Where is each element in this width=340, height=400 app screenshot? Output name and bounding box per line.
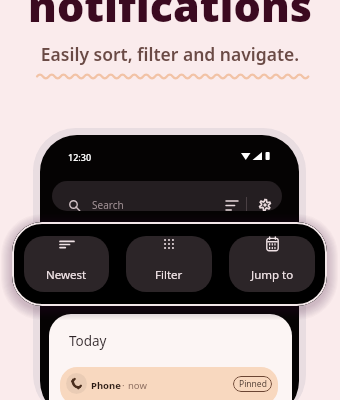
staticText: Newest [46,267,87,283]
staticText: now [128,379,147,392]
other: Search [69,200,80,211]
button[interactable]: Pinned [233,376,272,392]
other: Sort order [226,200,238,211]
staticText: Today [69,332,107,350]
button[interactable]: Phone [60,367,278,400]
button[interactable]: Filter [126,236,212,292]
staticText: Phone [91,379,121,392]
staticText: Filter [155,267,183,283]
staticText: · [122,379,125,392]
staticText: Search [92,198,124,211]
staticText: notifications [0,0,340,35]
staticText: Easily sort, filter and navigate. [0,42,340,66]
staticText: Jump to [251,267,294,283]
staticText: 12:30 [68,151,92,163]
other: Settings [259,199,271,211]
button[interactable]: Jump to [229,236,315,292]
button[interactable]: Newest [24,236,109,292]
button[interactable]: Search [52,181,282,211]
staticText: Pinned [239,378,267,390]
